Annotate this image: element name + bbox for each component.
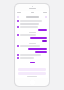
button[interactable] (17, 48, 47, 50)
button[interactable] (17, 40, 47, 42)
button[interactable] (17, 45, 47, 47)
button[interactable] (17, 51, 47, 53)
button[interactable]: Back (16, 14, 48, 19)
button[interactable] (17, 29, 47, 31)
button[interactable] (17, 37, 47, 39)
button[interactable] (17, 57, 47, 59)
button[interactable] (17, 54, 47, 56)
button[interactable] (17, 34, 47, 36)
button[interactable] (17, 20, 47, 25)
button[interactable] (17, 26, 47, 28)
